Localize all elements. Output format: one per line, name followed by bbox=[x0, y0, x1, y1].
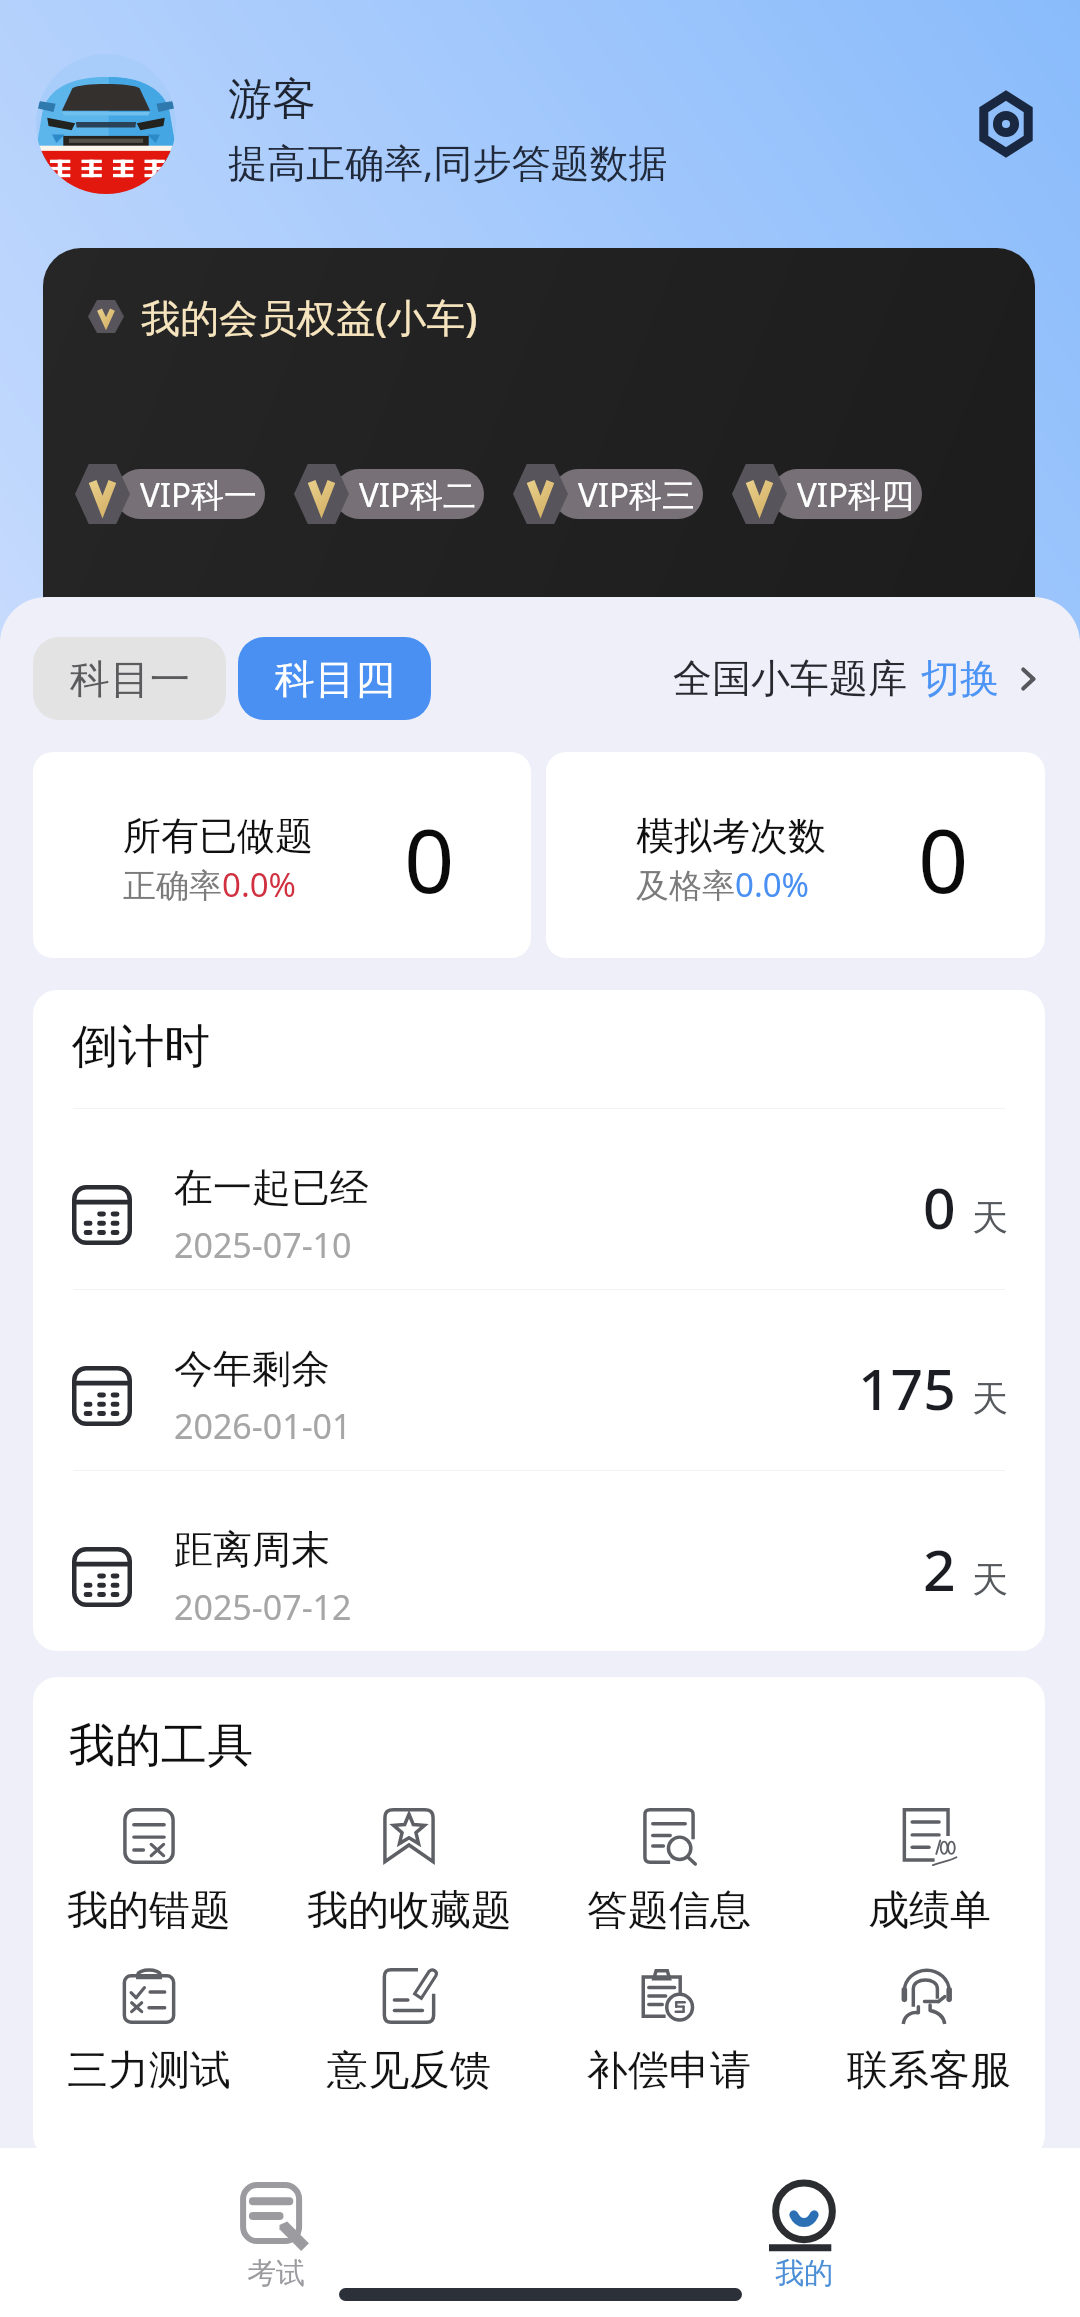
staticText: 科目四 bbox=[275, 654, 395, 704]
staticText: 模拟考次数 bbox=[636, 812, 826, 860]
staticText: 正确率0.0% bbox=[123, 862, 297, 907]
staticText: 成绩单 bbox=[868, 1885, 991, 1937]
staticText: 答题信息 bbox=[587, 1885, 751, 1937]
staticText: 三力测试 bbox=[67, 2045, 231, 2097]
staticText: 距离周末 bbox=[174, 1525, 330, 1574]
staticText: 0 bbox=[918, 799, 969, 919]
button[interactable]: VIP科二 bbox=[294, 464, 484, 524]
staticText: 全国小车题库 bbox=[673, 654, 907, 703]
staticText: 我的收藏题 bbox=[307, 1885, 512, 1937]
staticText: 考试 bbox=[247, 2255, 305, 2292]
button[interactable]: 我的会员权益(小车) bbox=[43, 248, 1035, 648]
button[interactable]: 我的收藏题 bbox=[304, 1808, 514, 1937]
staticText: 我的工具 bbox=[69, 1717, 253, 1775]
staticText: 在一起已经 bbox=[174, 1163, 369, 1212]
staticText: 175 bbox=[858, 1349, 956, 1427]
button[interactable]: 所有已做题 bbox=[33, 752, 531, 958]
staticText: 补偿申请 bbox=[587, 2045, 751, 2097]
button[interactable]: 成绩单 bbox=[824, 1808, 1034, 1937]
button[interactable]: 今年剩余 bbox=[33, 1290, 1045, 1470]
staticText: 我的 bbox=[775, 2255, 833, 2292]
staticText: 天 bbox=[972, 1376, 1008, 1421]
button[interactable]: 意见反馈 bbox=[304, 1968, 514, 2097]
staticText: 0 bbox=[404, 799, 455, 919]
staticText: VIP科四 bbox=[797, 472, 914, 517]
button[interactable]: Settings bbox=[960, 78, 1052, 170]
staticText: 所有已做题 bbox=[123, 812, 313, 860]
button[interactable]: 模拟考次数 bbox=[546, 752, 1045, 958]
button[interactable]: 全国小车题库 bbox=[673, 654, 1045, 703]
button[interactable]: 距离周末 bbox=[33, 1471, 1045, 1651]
button[interactable]: VIP科一 bbox=[75, 464, 265, 524]
staticText: VIP科三 bbox=[578, 472, 695, 517]
staticText: 2026-01-01 bbox=[174, 1403, 352, 1449]
button[interactable]: 我的错题 bbox=[44, 1808, 254, 1937]
button[interactable]: 三力测试 bbox=[44, 1968, 254, 2097]
staticText: 联系客服 bbox=[847, 2045, 1011, 2097]
staticText: 及格率0.0% bbox=[636, 862, 810, 907]
staticText: 0 bbox=[923, 1168, 956, 1246]
button[interactable]: 科目四 bbox=[238, 637, 431, 720]
staticText: VIP科二 bbox=[359, 472, 476, 517]
staticText: 我的错题 bbox=[67, 1885, 231, 1937]
staticText: 2025-07-10 bbox=[174, 1222, 352, 1268]
staticText: 提高正确率,同步答题数据 bbox=[228, 135, 668, 188]
staticText: 切换 bbox=[921, 654, 999, 703]
button[interactable]: 科目一 bbox=[33, 637, 226, 720]
staticText: VIP科一 bbox=[140, 472, 257, 517]
staticText: 2 bbox=[923, 1530, 956, 1608]
staticText: 天 bbox=[972, 1195, 1008, 1240]
button[interactable]: 联系客服 bbox=[824, 1968, 1034, 2097]
staticText: 今年剩余 bbox=[174, 1344, 330, 1393]
button[interactable]: VIP科三 bbox=[513, 464, 703, 524]
button[interactable]: 在一起已经 bbox=[33, 1109, 1045, 1289]
staticText: 2025-07-12 bbox=[174, 1584, 352, 1630]
staticText: 我的会员权益(小车) bbox=[141, 290, 478, 343]
button[interactable]: 答题信息 bbox=[564, 1808, 774, 1937]
staticText: 科目一 bbox=[70, 654, 190, 704]
staticText: 倒计时 bbox=[72, 1018, 210, 1076]
staticText: 天 bbox=[972, 1557, 1008, 1602]
button[interactable]: VIP科四 bbox=[732, 464, 922, 524]
staticText: 意见反馈 bbox=[327, 2045, 491, 2097]
staticText: 游客 bbox=[228, 72, 316, 127]
button[interactable]: 补偿申请 bbox=[564, 1968, 774, 2097]
button[interactable]: 我的 bbox=[674, 2183, 934, 2292]
button[interactable]: 考试 bbox=[146, 2183, 406, 2292]
